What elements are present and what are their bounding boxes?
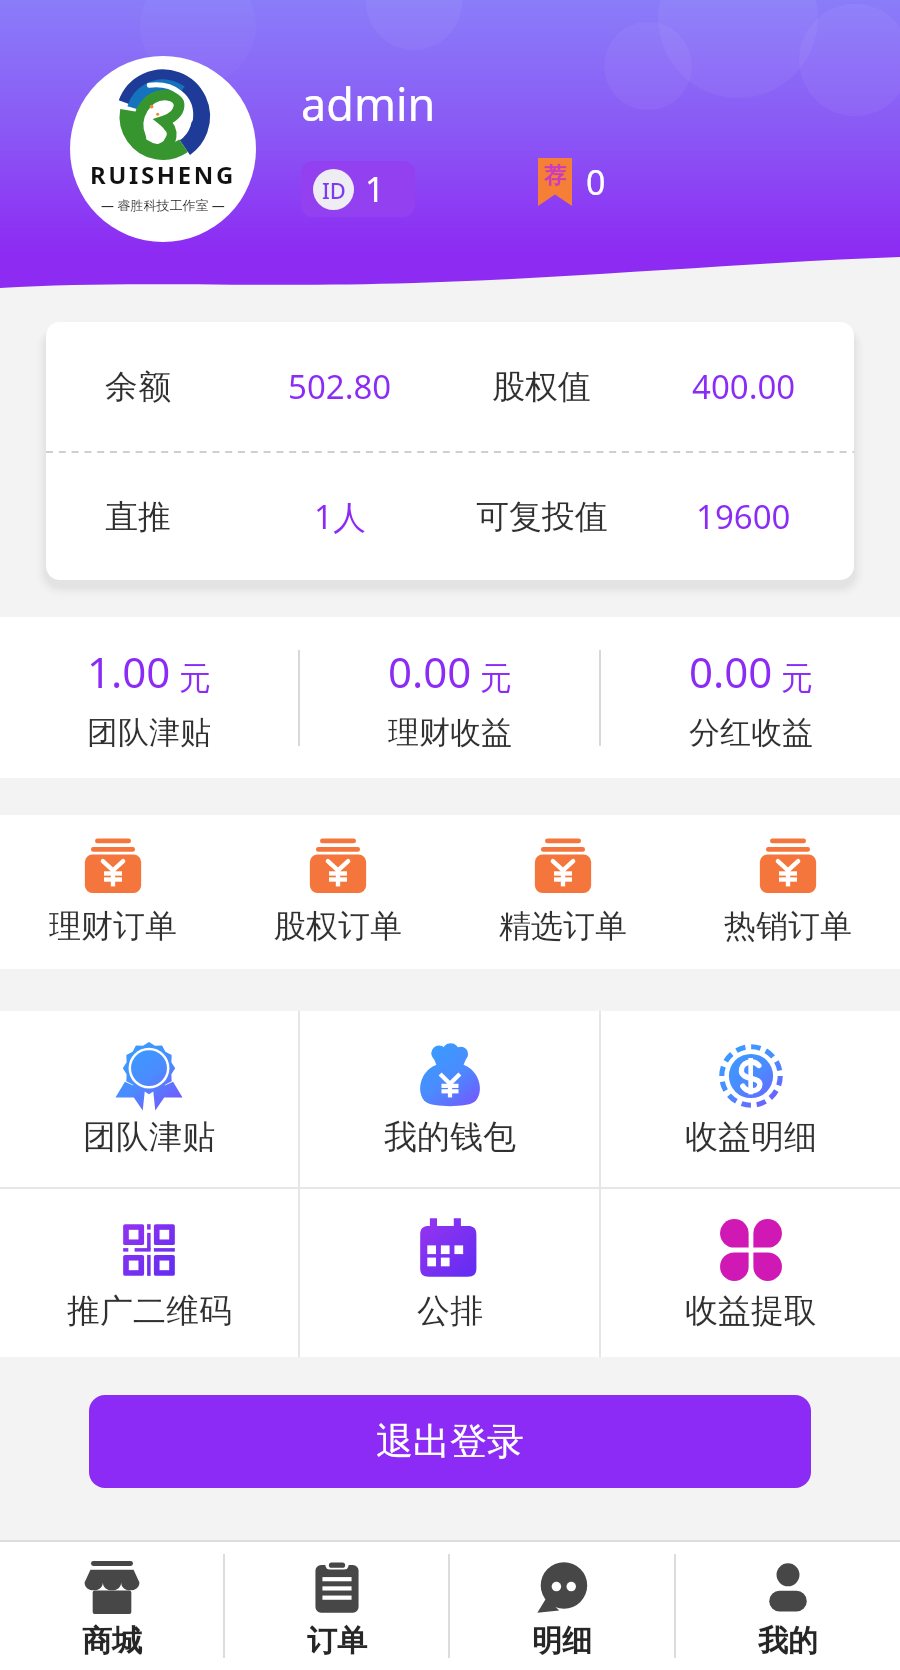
- staticText: 我的钱包: [384, 1116, 516, 1158]
- staticText: 元: [781, 658, 813, 698]
- staticText: 荐: [544, 162, 566, 190]
- staticText: 精选订单: [499, 906, 627, 946]
- staticText: 0.00: [388, 643, 472, 700]
- button[interactable]: 退出登录: [89, 1395, 811, 1488]
- staticText: 订单: [307, 1622, 367, 1660]
- other: Orders: [309, 1560, 365, 1616]
- staticText: admin: [301, 73, 436, 134]
- other: Details: [534, 1560, 590, 1616]
- button[interactable]: 收益提取: [601, 1189, 900, 1357]
- button[interactable]: Orders: [225, 1542, 448, 1670]
- button[interactable]: 股权订单: [225, 815, 450, 969]
- staticText: 理财订单: [49, 906, 177, 946]
- other: Shop: [84, 1560, 140, 1616]
- staticText: 公排: [417, 1290, 483, 1332]
- staticText: 我的: [758, 1622, 818, 1660]
- button[interactable]: 推广二维码: [0, 1189, 298, 1357]
- staticText: 团队津贴: [83, 1116, 215, 1158]
- button[interactable]: 理财订单: [0, 815, 225, 969]
- staticText: 400.00: [692, 364, 796, 409]
- staticText: RUISHENG: [90, 158, 236, 191]
- other: Mine: [760, 1560, 816, 1616]
- staticText: 直推: [105, 496, 171, 538]
- staticText: 分红收益: [689, 713, 813, 752]
- staticText: 商城: [82, 1622, 142, 1660]
- staticText: 1: [365, 166, 385, 212]
- button[interactable]: 0.00: [601, 617, 900, 778]
- staticText: 0.00: [689, 643, 773, 700]
- button[interactable]: 1.00: [0, 617, 298, 778]
- staticText: 19600: [696, 494, 791, 539]
- staticText: 元: [480, 658, 512, 698]
- staticText: 1人: [314, 494, 366, 539]
- button[interactable]: ID: [301, 161, 415, 217]
- staticText: — 睿胜科技工作室 —: [101, 196, 225, 214]
- staticText: 明细: [532, 1622, 592, 1660]
- staticText: 收益提取: [685, 1290, 817, 1332]
- staticText: 余额: [105, 366, 171, 408]
- staticText: 1.00: [87, 643, 171, 700]
- button[interactable]: Shop: [0, 1542, 223, 1670]
- staticText: 可复投值: [476, 496, 608, 538]
- staticText: 502.80: [288, 364, 392, 409]
- button[interactable]: 团队津贴: [0, 1011, 298, 1187]
- button[interactable]: 热销订单: [675, 815, 900, 969]
- staticText: 收益明细: [685, 1116, 817, 1158]
- button[interactable]: 公排: [300, 1189, 599, 1357]
- button[interactable]: 0.00: [300, 617, 599, 778]
- button[interactable]: Details: [450, 1542, 674, 1670]
- button[interactable]: 我的钱包: [300, 1011, 599, 1187]
- staticText: 理财收益: [388, 713, 512, 752]
- staticText: 热销订单: [724, 906, 852, 946]
- staticText: 股权订单: [274, 906, 402, 946]
- staticText: 元: [179, 658, 211, 698]
- staticText: ID: [322, 175, 346, 205]
- button[interactable]: 收益明细: [601, 1011, 900, 1187]
- staticText: 推广二维码: [67, 1290, 232, 1332]
- staticText: 0: [586, 159, 606, 205]
- staticText: 退出登录: [376, 1418, 524, 1465]
- button[interactable]: 精选订单: [450, 815, 675, 969]
- staticText: 股权值: [492, 366, 591, 408]
- button[interactable]: 荐: [538, 158, 606, 206]
- button[interactable]: Mine: [676, 1542, 900, 1670]
- staticText: 团队津贴: [87, 713, 211, 752]
